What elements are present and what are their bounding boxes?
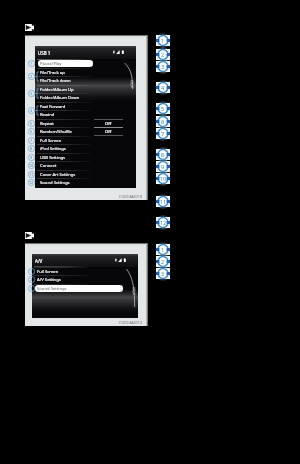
staticText: 1: [30, 61, 33, 66]
staticText: Folder/Album Down: [40, 95, 80, 101]
button[interactable]: Callout 12: [28, 179, 35, 186]
staticText: Off: [105, 121, 112, 127]
button[interactable]: Legend item 3: [156, 61, 170, 72]
staticText: Repeat: [40, 121, 54, 127]
staticText: 12: [29, 180, 34, 185]
button[interactable]: Legend item 4: [156, 82, 170, 93]
staticText: 5: [30, 121, 33, 126]
staticText: 2: [30, 74, 33, 79]
staticText: 3: [161, 270, 165, 277]
staticText: File/Track down: [40, 78, 71, 84]
button[interactable]: Legend item 6: [156, 116, 170, 127]
staticText: 9: [161, 163, 165, 170]
button[interactable]: Folder/Album Down: [35, 93, 136, 102]
button[interactable]: Figure reference marker: [25, 232, 34, 239]
button[interactable]: Callout 1: [28, 60, 35, 67]
staticText: USB 1: [38, 50, 51, 56]
staticText: USB Settings: [40, 155, 66, 161]
staticText: Connect: [40, 163, 57, 169]
button[interactable]: Callout 3: [28, 90, 35, 97]
button[interactable]: Legend item 1: [156, 244, 170, 255]
staticText: 3: [30, 286, 33, 291]
button[interactable]: Callout 3: [28, 285, 35, 292]
button[interactable]: Repeat: [35, 119, 136, 128]
staticText: Sound Settings: [37, 286, 67, 292]
button[interactable]: A/V Settings: [32, 275, 138, 284]
button[interactable]: USB 1: [35, 46, 136, 59]
button[interactable]: Random/Shuffle: [35, 127, 136, 136]
staticText: 12: [160, 219, 167, 226]
button[interactable]: Fast Forward: [35, 102, 136, 111]
staticText: 7: [161, 130, 165, 137]
button[interactable]: Callout 2: [28, 73, 35, 80]
staticText: Pause/Play: [40, 61, 62, 67]
button[interactable]: Callout 8: [28, 145, 35, 152]
button[interactable]: Legend item 5: [156, 103, 170, 114]
staticText: A/V: [35, 258, 43, 264]
staticText: A/V Settings: [37, 277, 61, 283]
staticText: 1: [161, 246, 165, 253]
button[interactable]: Legend item 2: [156, 49, 170, 60]
button[interactable]: Sound Settings: [35, 178, 136, 187]
button[interactable]: Callout 1: [28, 268, 35, 275]
button[interactable]: Callout 5: [28, 120, 35, 127]
staticText: 8: [30, 146, 33, 151]
staticText: Full Screen: [40, 138, 62, 144]
button[interactable]: Cover Art Settings: [35, 170, 136, 179]
button[interactable]: Connect: [35, 161, 136, 170]
button[interactable]: File/Track down: [35, 76, 136, 85]
button[interactable]: Sound Settings: [32, 284, 138, 293]
staticText: 7: [30, 138, 33, 143]
staticText: 6: [30, 129, 33, 134]
button[interactable]: Legend item 10: [156, 173, 170, 184]
button[interactable]: A/V: [32, 254, 138, 267]
staticText: 9: [30, 155, 33, 160]
staticText: Off: [105, 129, 112, 135]
button[interactable]: USB Settings: [35, 153, 136, 162]
staticText: 6: [161, 118, 165, 125]
staticText: 4: [30, 108, 33, 113]
staticText: Random/Shuffle: [40, 129, 72, 135]
button[interactable]: Legend item 8: [156, 149, 170, 160]
button[interactable]: Full Screen: [35, 136, 136, 145]
staticText: 11: [29, 172, 34, 177]
other: Status indicators: [115, 258, 127, 262]
staticText: Rewind: [40, 112, 55, 118]
button[interactable]: File/Track up: [35, 68, 136, 77]
staticText: Folder/Album Up: [40, 87, 74, 93]
button[interactable]: iPod Settings: [35, 144, 136, 153]
staticText: 3: [161, 63, 165, 70]
staticText: 2: [30, 277, 33, 282]
button[interactable]: Legend item 7: [156, 128, 170, 139]
button[interactable]: Callout 4: [28, 107, 35, 114]
staticText: 2: [161, 258, 165, 265]
staticText: File/Track up: [40, 70, 65, 76]
staticText: CUIO4A2013: [119, 320, 143, 325]
staticText: 10: [29, 163, 34, 168]
button[interactable]: Rewind: [35, 110, 136, 119]
button[interactable]: Callout 2: [28, 276, 35, 283]
button[interactable]: Callout 11: [28, 171, 35, 178]
staticText: Sound Settings: [40, 180, 70, 186]
button[interactable]: Folder/Album Up: [35, 85, 136, 94]
button[interactable]: Legend item 1: [156, 35, 170, 46]
button[interactable]: Callout 7: [28, 137, 35, 144]
button[interactable]: Legend item 12: [156, 217, 170, 228]
button[interactable]: Callout 6: [28, 128, 35, 135]
button[interactable]: Callout 10: [28, 162, 35, 169]
button[interactable]: Legend item 11: [156, 196, 170, 207]
staticText: 4: [161, 84, 165, 91]
staticText: CUIO4A2010: [119, 194, 143, 199]
button[interactable]: Pause/Play: [35, 59, 136, 68]
button[interactable]: Legend item 2: [156, 256, 170, 267]
button[interactable]: Figure reference marker: [25, 24, 34, 31]
staticText: 3: [30, 91, 33, 96]
button[interactable]: Callout 9: [28, 154, 35, 161]
staticText: 10: [160, 175, 167, 182]
staticText: iPod Settings: [40, 146, 66, 152]
button[interactable]: Full Screen: [32, 267, 138, 276]
staticText: Cover Art Settings: [40, 172, 76, 178]
button[interactable]: Legend item 3: [156, 268, 170, 279]
button[interactable]: Legend item 9: [156, 161, 170, 172]
staticText: Full Screen: [37, 269, 59, 275]
